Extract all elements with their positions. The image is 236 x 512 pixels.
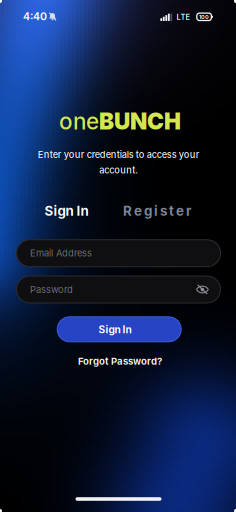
button[interactable]: Sign In bbox=[57, 317, 181, 342]
staticText: one bbox=[59, 108, 99, 135]
button[interactable]: Register bbox=[123, 203, 191, 219]
staticText: 4:40 bbox=[23, 10, 47, 23]
staticText: LTE bbox=[176, 12, 190, 21]
staticText: 100 bbox=[199, 14, 209, 20]
button[interactable]: Password bbox=[16, 276, 220, 303]
staticText: account. bbox=[99, 165, 138, 176]
staticText: Register bbox=[123, 203, 191, 219]
button[interactable]: Show password bbox=[196, 285, 208, 294]
staticText: Sign In bbox=[98, 323, 131, 336]
staticText: Sign In bbox=[44, 203, 88, 219]
staticText: BUNCH bbox=[99, 108, 181, 135]
staticText: Password bbox=[30, 284, 73, 295]
staticText: Email Address bbox=[30, 248, 92, 259]
staticText: Forgot Password? bbox=[78, 355, 162, 367]
button[interactable]: Forgot Password? bbox=[78, 355, 162, 367]
button[interactable]: Email Address bbox=[16, 240, 220, 267]
staticText: Enter your credentials to access your bbox=[38, 149, 200, 160]
button[interactable]: Sign In bbox=[44, 203, 88, 219]
